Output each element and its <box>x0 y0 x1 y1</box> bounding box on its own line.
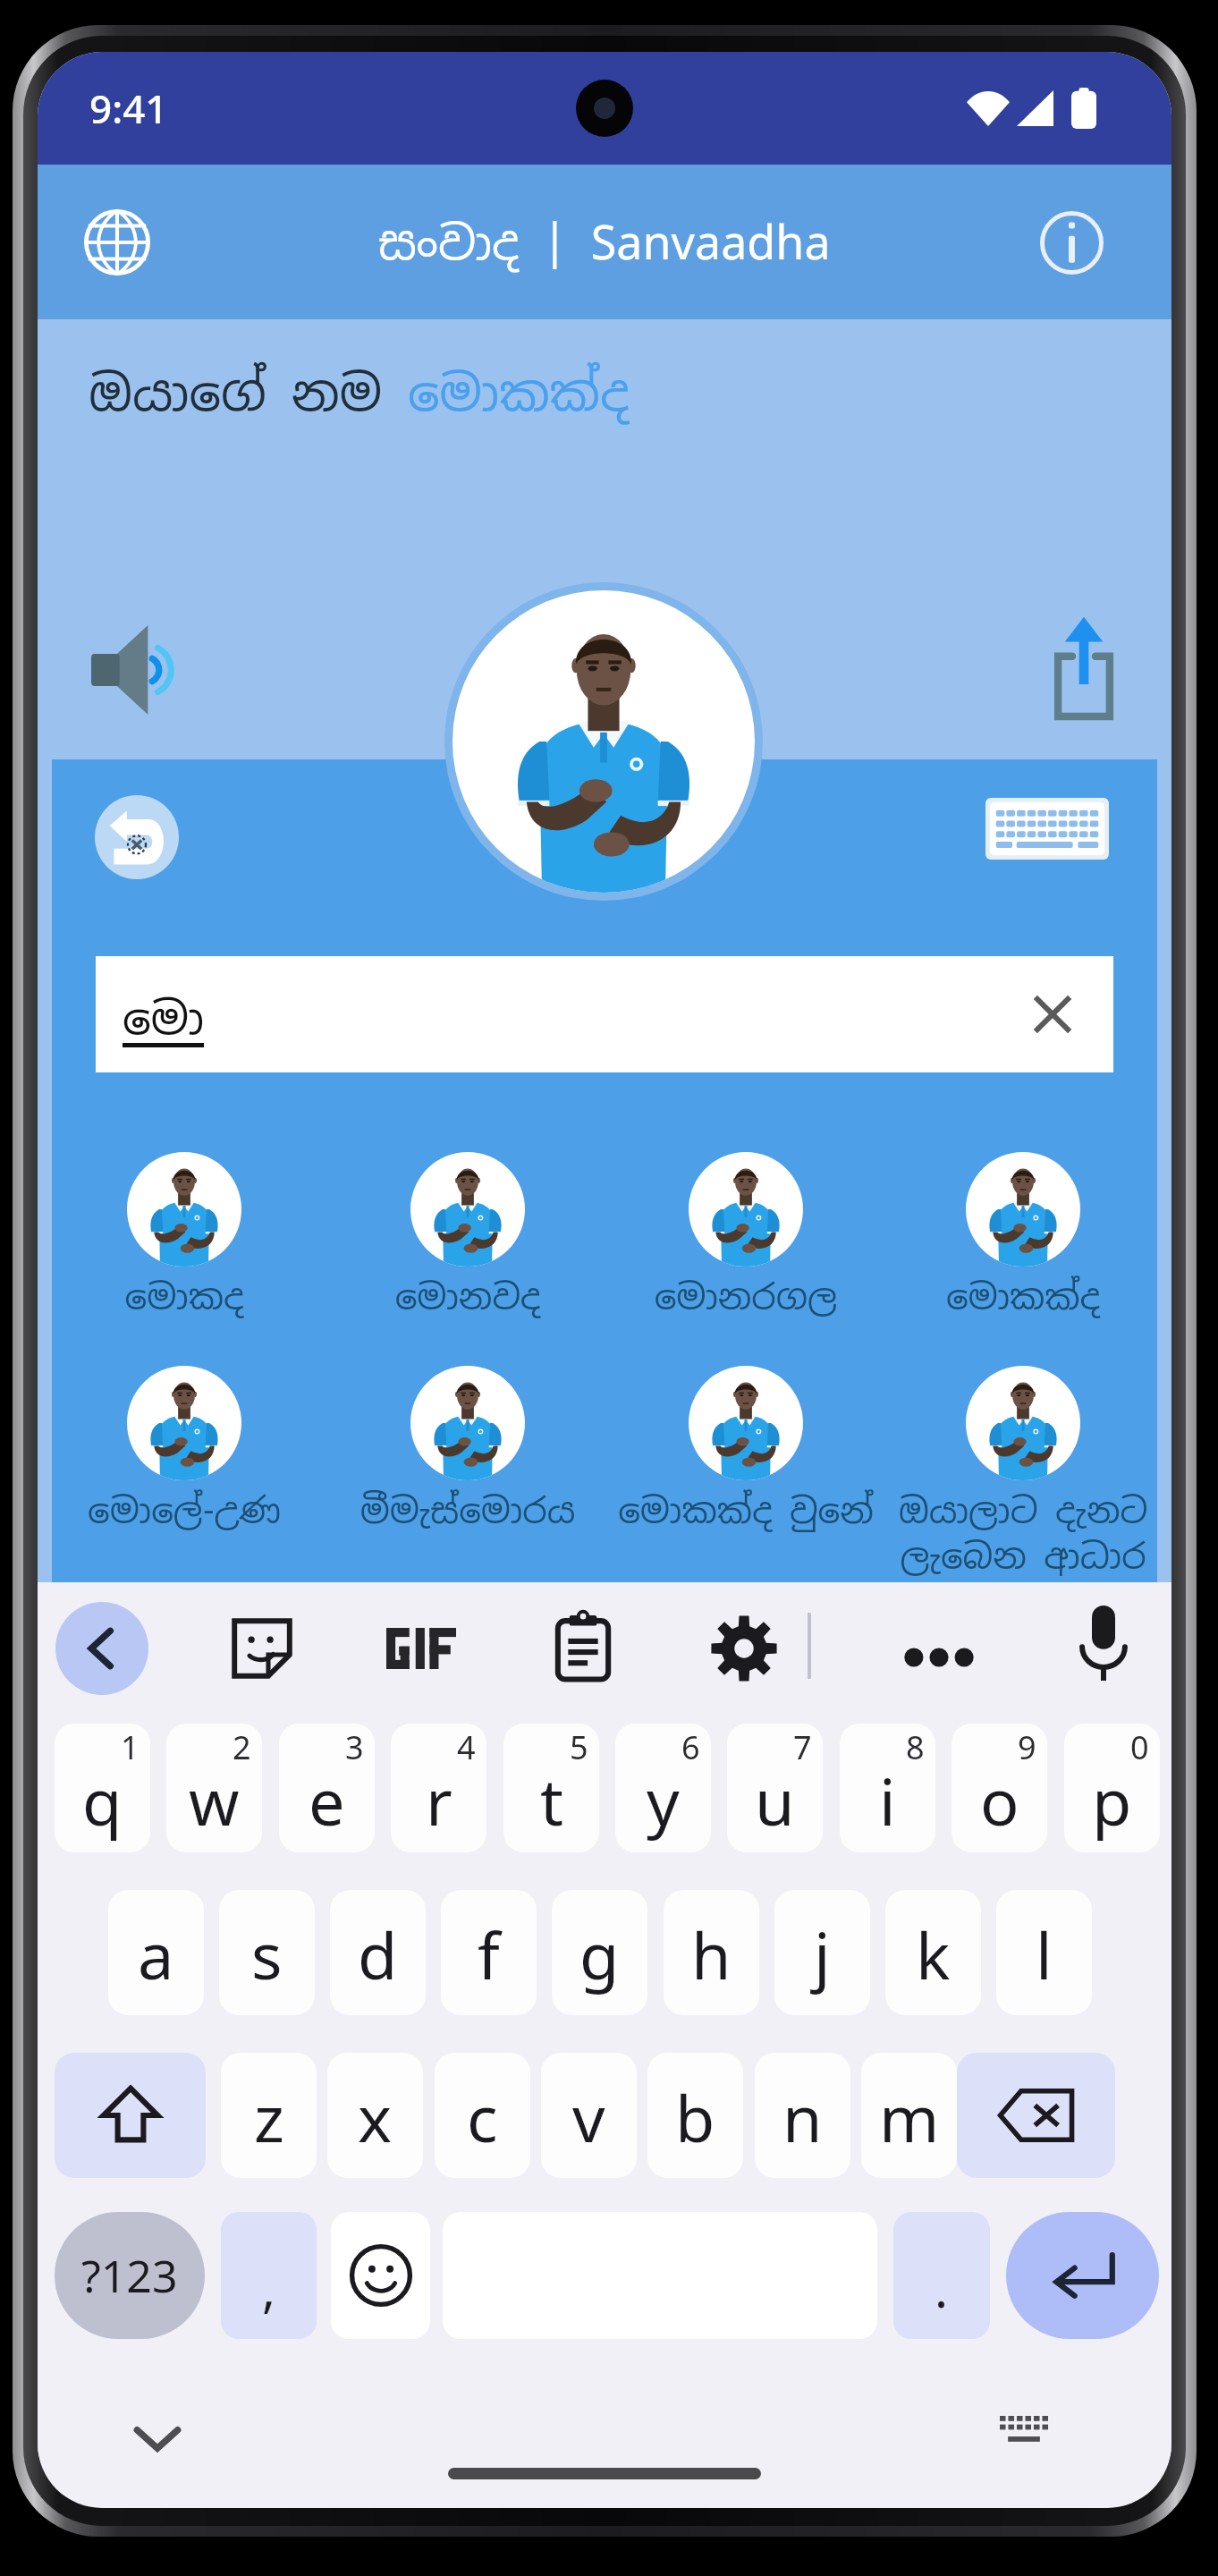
button[interactable]: Share <box>1037 610 1130 719</box>
button[interactable]: i <box>840 1724 935 1852</box>
staticText: 3 <box>345 1725 364 1769</box>
button[interactable]: a <box>108 1890 204 2015</box>
staticText: මොකක්ද <box>880 1275 1166 1320</box>
button[interactable]: q <box>55 1724 150 1852</box>
button[interactable]: b <box>647 2053 743 2178</box>
button[interactable]: More <box>901 1620 977 1695</box>
button[interactable]: Settings <box>706 1611 782 1686</box>
staticText: ?123 <box>81 2245 178 2306</box>
button[interactable]: Emoji <box>331 2212 430 2339</box>
button[interactable]: . <box>893 2212 990 2339</box>
staticText: g <box>579 1911 620 1998</box>
staticText: 5 <box>570 1725 588 1769</box>
button[interactable]: d <box>330 1890 426 2015</box>
button[interactable]: Keyboard <box>985 798 1109 860</box>
button[interactable]: n <box>755 2053 850 2178</box>
button[interactable]: Enter <box>1006 2212 1159 2339</box>
staticText: f <box>478 1911 500 1998</box>
button[interactable]: Switch keyboard <box>996 2412 1052 2448</box>
button[interactable]: l <box>996 1890 1092 2015</box>
button[interactable]: Backspace <box>957 2053 1115 2178</box>
staticText: x <box>358 2073 393 2161</box>
button[interactable]: මො <box>96 956 1113 1072</box>
button[interactable]: මොලේ-උණ <box>41 1366 327 1572</box>
button[interactable]: Hide keyboard <box>125 2407 190 2471</box>
button[interactable]: මොකද <box>41 1152 327 1358</box>
button[interactable]: h <box>664 1890 759 2015</box>
staticText: , <box>262 2254 276 2322</box>
button[interactable]: Back <box>55 1602 148 1695</box>
button[interactable]: Stickers <box>224 1611 300 1686</box>
button[interactable]: r <box>391 1724 486 1852</box>
button[interactable]: o <box>952 1724 1047 1852</box>
staticText: v <box>572 2073 605 2161</box>
button[interactable]: y <box>615 1724 711 1852</box>
button[interactable]: u <box>727 1724 823 1852</box>
button[interactable]: k <box>885 1890 981 2015</box>
staticText: මොනවද <box>325 1275 611 1320</box>
button[interactable]: , <box>221 2212 317 2339</box>
staticText: 1 <box>121 1725 140 1769</box>
staticText: k <box>916 1911 951 1998</box>
button[interactable]: Clear text <box>1011 973 1094 1055</box>
button[interactable]: p <box>1064 1724 1160 1852</box>
button[interactable]: Shift <box>55 2053 206 2178</box>
staticText: 9:41 <box>89 81 168 135</box>
staticText: p <box>1092 1757 1132 1844</box>
staticText: q <box>82 1757 123 1844</box>
staticText: . <box>935 2254 949 2322</box>
button[interactable]: Sign video <box>444 582 763 901</box>
button[interactable]: මොනරගල <box>603 1152 889 1358</box>
staticText: u <box>755 1757 795 1844</box>
button[interactable]: Play sound <box>91 623 177 716</box>
button[interactable]: ඔයාලාට දැනට ලැබෙන ආධාර මොනවද <box>880 1366 1166 1572</box>
staticText: ඔයාගේ නම <box>89 360 408 425</box>
button[interactable]: j <box>774 1890 870 2015</box>
button[interactable]: Clear <box>95 795 179 879</box>
staticText: w <box>189 1757 240 1844</box>
button[interactable]: ?123 <box>55 2212 205 2339</box>
button[interactable]: මොනවද <box>325 1152 611 1358</box>
staticText: l <box>1036 1911 1053 1998</box>
staticText: මොනරගල <box>603 1275 889 1320</box>
staticText: 2 <box>233 1725 251 1769</box>
staticText: ඔයාලාට දැනට ලැබෙන ආධාර මොනවද <box>889 1488 1157 1623</box>
staticText: 7 <box>793 1725 812 1769</box>
staticText: මො <box>123 988 205 1046</box>
staticText: o <box>980 1757 1019 1844</box>
button[interactable]: මොකක්ද <box>880 1152 1166 1358</box>
staticText: මොකද <box>41 1275 327 1320</box>
button[interactable]: c <box>435 2053 530 2178</box>
button[interactable]: w <box>166 1724 262 1852</box>
staticText: y <box>647 1757 680 1844</box>
button[interactable]: x <box>327 2053 423 2178</box>
button[interactable]: GIF <box>384 1611 459 1686</box>
staticText: n <box>782 2073 823 2161</box>
button[interactable]: v <box>541 2053 637 2178</box>
staticText: z <box>254 2073 284 2161</box>
button[interactable]: s <box>219 1890 315 2015</box>
button[interactable]: f <box>441 1890 537 2015</box>
staticText: s <box>251 1911 283 1998</box>
staticText: 4 <box>457 1725 476 1769</box>
staticText: මොකක්ද වුනේ <box>603 1488 889 1534</box>
button[interactable]: z <box>221 2053 317 2178</box>
button[interactable]: මොකක්ද වුනේ <box>603 1366 889 1572</box>
staticText: මීමැස්මොරය <box>325 1488 611 1534</box>
staticText: 0 <box>1130 1725 1149 1769</box>
button[interactable]: g <box>552 1890 647 2015</box>
button[interactable]: Info <box>1031 202 1112 283</box>
button[interactable]: Language <box>77 202 157 283</box>
staticText: t <box>540 1757 563 1844</box>
staticText: b <box>675 2073 715 2161</box>
button[interactable]: e <box>279 1724 375 1852</box>
button[interactable]: මීමැස්මොරය <box>325 1366 611 1572</box>
button[interactable]: t <box>503 1724 599 1852</box>
staticText: 9 <box>1018 1725 1036 1769</box>
staticText: c <box>467 2073 498 2161</box>
button[interactable]: Voice input <box>1066 1606 1141 1681</box>
button[interactable]: Clipboard <box>546 1609 621 1684</box>
staticText: සංවාද | Sanvaadha <box>378 212 831 273</box>
button[interactable]: m <box>861 2053 957 2178</box>
